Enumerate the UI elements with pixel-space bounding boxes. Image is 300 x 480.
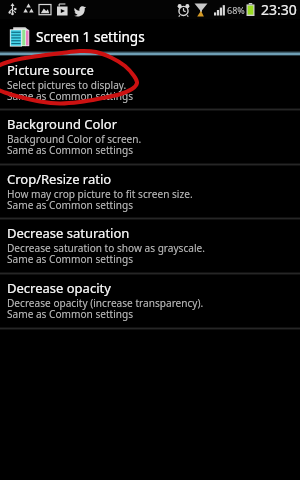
button[interactable]: Crop/Resize ratio [0,165,300,218]
staticText: Decrease saturation [7,224,130,242]
staticText: Screen 1 settings [36,27,145,46]
button[interactable]: Picture source [0,56,300,109]
staticText: 68% [227,4,245,16]
button[interactable]: Background Color [0,110,300,163]
staticText: Same as Common settings [7,143,134,157]
staticText: Same as Common settings [7,198,134,212]
button[interactable]: Decrease opacity [0,274,300,327]
staticText: Same as Common settings [7,252,134,266]
staticText: Same as Common settings [7,307,134,321]
staticText: How may crop picture to fit screen size. [7,187,193,201]
staticText: Background Color [7,115,118,133]
staticText: Decrease opacity [7,279,111,297]
staticText: Decrease saturation to show as grayscale… [7,241,205,255]
staticText: Select pictures to display. [7,78,127,92]
staticText: Picture source [7,61,94,79]
staticText: Background Color of screen. [7,132,142,146]
staticText: 23:30 [261,0,297,19]
staticText: Crop/Resize ratio [7,170,112,188]
staticText: Decrease opacity (increase transparency)… [7,296,204,310]
staticText: Same as Common settings [7,89,134,103]
button[interactable]: Decrease saturation [0,219,300,272]
button[interactable]: Screen 1 settings, navigate up [0,19,300,53]
